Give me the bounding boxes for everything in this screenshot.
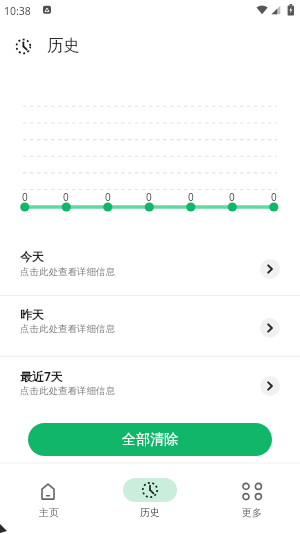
- staticText: 历史: [140, 506, 160, 519]
- staticText: 0: [271, 190, 277, 204]
- staticText: 点击此处查看详细信息: [20, 385, 115, 397]
- staticText: 0: [22, 190, 28, 204]
- button[interactable]: 今天: [0, 235, 300, 295]
- button[interactable]: 主页: [0, 464, 100, 534]
- staticText: 0: [146, 190, 152, 204]
- staticText: 今天: [20, 249, 44, 264]
- staticText: 主页: [39, 506, 59, 519]
- button[interactable]: 历史: [100, 464, 200, 534]
- staticText: 0: [105, 190, 111, 204]
- staticText: 点击此处查看详细信息: [20, 323, 115, 335]
- button[interactable]: 全部清除: [28, 423, 272, 456]
- button[interactable]: 更多: [200, 464, 300, 534]
- staticText: 0: [188, 190, 194, 204]
- staticText: 历史: [47, 35, 80, 56]
- button[interactable]: 昨天: [0, 296, 300, 356]
- staticText: 更多: [242, 506, 262, 519]
- staticText: 最近7天: [20, 368, 63, 384]
- staticText: 点击此处查看详细信息: [20, 266, 115, 278]
- staticText: 全部清除: [122, 431, 178, 449]
- staticText: 昨天: [20, 307, 44, 322]
- staticText: 10:38: [4, 4, 31, 18]
- button[interactable]: 最近7天: [0, 357, 300, 417]
- staticText: 0: [63, 190, 69, 204]
- staticText: 0: [229, 190, 235, 204]
